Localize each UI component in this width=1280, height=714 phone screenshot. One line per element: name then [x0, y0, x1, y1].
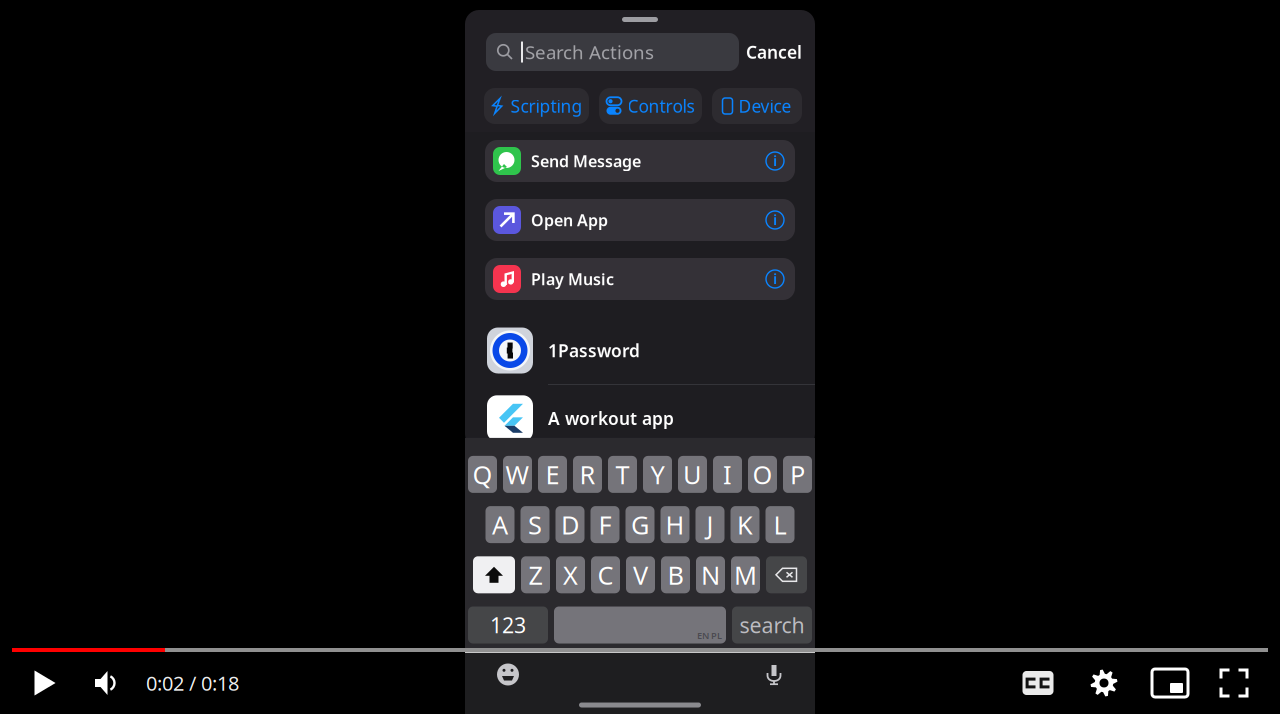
staticText: 1Password	[548, 339, 640, 362]
button[interactable]: F	[590, 506, 619, 543]
button[interactable]: V	[626, 556, 655, 593]
button[interactable]: Delete	[766, 556, 807, 593]
button[interactable]: B	[661, 556, 690, 593]
staticText: 0:02 / 0:18	[146, 670, 239, 696]
button[interactable]: K	[730, 506, 759, 543]
button[interactable]: search	[732, 606, 812, 643]
staticText: M	[734, 558, 757, 592]
button[interactable]: S	[520, 506, 549, 543]
button[interactable]: Play Music	[485, 258, 795, 300]
staticText: Z	[528, 558, 542, 592]
staticText: Search Actions	[525, 40, 654, 64]
staticText: search	[739, 611, 804, 639]
staticText: E	[545, 458, 559, 491]
staticText: X	[563, 558, 578, 592]
button[interactable]: Shift	[473, 556, 515, 593]
staticText: I	[723, 458, 732, 491]
staticText: T	[615, 458, 629, 491]
button[interactable]: Mute	[76, 658, 138, 708]
button[interactable]: E	[538, 456, 567, 493]
button[interactable]: Y	[643, 456, 672, 493]
staticText: H	[665, 508, 684, 541]
button[interactable]: Z	[521, 556, 550, 593]
staticText: Play Music	[531, 268, 614, 290]
button[interactable]: N	[696, 556, 725, 593]
button[interactable]: Play	[14, 658, 76, 708]
staticText: i	[773, 210, 777, 229]
staticText: C	[597, 558, 613, 592]
button[interactable]: X	[556, 556, 585, 593]
staticText: A workout app	[548, 407, 674, 430]
button[interactable]: Open App	[485, 199, 795, 241]
staticText: EN PL	[697, 629, 722, 641]
button[interactable]: Device	[712, 88, 802, 124]
staticText: i	[773, 151, 777, 170]
button[interactable]: L	[765, 506, 794, 543]
staticText: Cancel	[746, 40, 802, 63]
button[interactable]: J	[695, 506, 724, 543]
button[interactable]: U	[678, 456, 707, 493]
button[interactable]: Settings	[1071, 658, 1137, 708]
staticText: A	[492, 508, 508, 541]
button[interactable]: T	[608, 456, 637, 493]
staticText: D	[561, 508, 579, 541]
staticText: Controls	[627, 94, 694, 117]
staticText: U	[683, 458, 702, 491]
button[interactable]: P	[783, 456, 812, 493]
staticText: S	[528, 508, 542, 541]
button[interactable]: C	[591, 556, 620, 593]
button[interactable]: Scripting	[484, 88, 589, 124]
staticText: G	[631, 508, 649, 541]
button[interactable]: A	[485, 506, 514, 543]
button[interactable]: O	[748, 456, 777, 493]
button[interactable]: Space	[554, 606, 726, 643]
button[interactable]: 123	[468, 606, 548, 643]
staticText: i	[773, 269, 777, 288]
staticText: Y	[650, 458, 664, 491]
button[interactable]: R	[573, 456, 602, 493]
staticText: J	[706, 508, 713, 541]
staticText: F	[598, 508, 611, 541]
button[interactable]: Send Message	[485, 140, 795, 182]
button[interactable]: A workout app	[465, 385, 815, 452]
button[interactable]: M	[731, 556, 760, 593]
staticText: 123	[490, 611, 526, 639]
staticText: R	[579, 458, 595, 491]
button[interactable]: Cancel	[742, 33, 806, 71]
staticText: N	[701, 558, 720, 592]
button[interactable]: Miniplayer	[1137, 658, 1203, 708]
staticText: B	[667, 558, 683, 592]
button[interactable]: I	[713, 456, 742, 493]
button[interactable]: Controls	[599, 88, 702, 124]
staticText: V	[633, 558, 648, 592]
button[interactable]: Q	[468, 456, 497, 493]
staticText: Send Message	[531, 150, 641, 172]
button[interactable]: Dictate	[757, 657, 791, 691]
button[interactable]: W	[503, 456, 532, 493]
button[interactable]: Subtitles	[1005, 658, 1071, 708]
button[interactable]: 1Password	[465, 317, 815, 384]
staticText: W	[505, 458, 529, 491]
button[interactable]: Emoji	[491, 657, 525, 691]
staticText: K	[737, 508, 753, 541]
button[interactable]: G	[625, 506, 654, 543]
button[interactable]: D	[555, 506, 584, 543]
staticText: P	[790, 458, 805, 491]
staticText: O	[752, 458, 772, 491]
staticText: Device	[738, 94, 791, 117]
staticText: Scripting	[510, 94, 582, 117]
staticText: Q	[472, 458, 492, 491]
staticText: L	[773, 508, 786, 541]
button[interactable]: H	[660, 506, 689, 543]
button[interactable]: Fullscreen	[1203, 658, 1265, 708]
staticText: Open App	[531, 209, 608, 231]
